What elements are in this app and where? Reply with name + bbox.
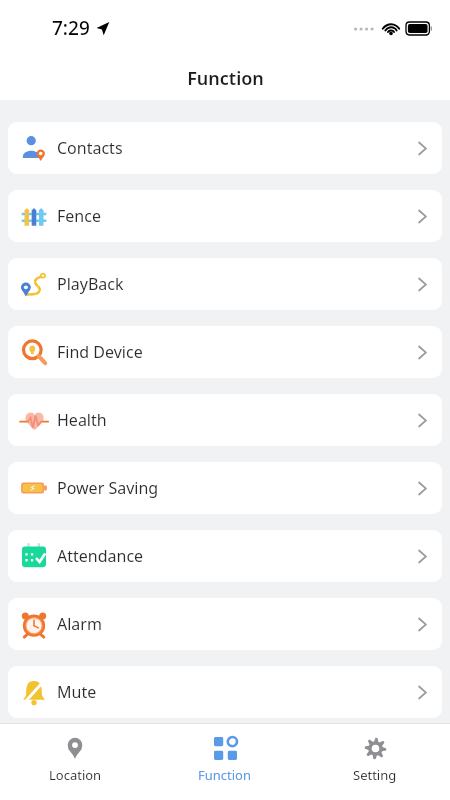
button[interactable]: Find Device	[8, 326, 442, 378]
staticText: Function	[198, 766, 252, 784]
other: Function	[214, 737, 237, 760]
button[interactable]: Health	[8, 394, 442, 446]
button[interactable]: Setting	[300, 724, 450, 800]
other: Location	[63, 736, 87, 760]
button[interactable]: Mute	[8, 666, 442, 718]
staticText: Contacts	[57, 137, 123, 159]
staticText: Setting	[353, 766, 397, 784]
button[interactable]: Power Saving	[8, 462, 442, 514]
button[interactable]: Fence	[8, 190, 442, 242]
staticText: Function	[187, 66, 264, 91]
other: Setting	[364, 737, 387, 760]
staticText: Power Saving	[57, 477, 159, 499]
staticText: Health	[57, 409, 107, 431]
button[interactable]: Attendance	[8, 530, 442, 582]
staticText: Location	[49, 766, 102, 784]
button[interactable]: Location	[0, 724, 150, 800]
staticText: 7:29	[52, 15, 90, 41]
staticText: PlayBack	[57, 273, 124, 295]
staticText: Attendance	[57, 545, 144, 567]
button[interactable]: Alarm	[8, 598, 442, 650]
staticText: Fence	[57, 205, 101, 227]
button[interactable]: Contacts	[8, 122, 442, 174]
staticText: Mute	[57, 681, 97, 703]
staticText: Alarm	[57, 613, 102, 635]
button[interactable]: PlayBack	[8, 258, 442, 310]
button[interactable]: Function	[150, 724, 300, 800]
staticText: Find Device	[57, 341, 143, 363]
